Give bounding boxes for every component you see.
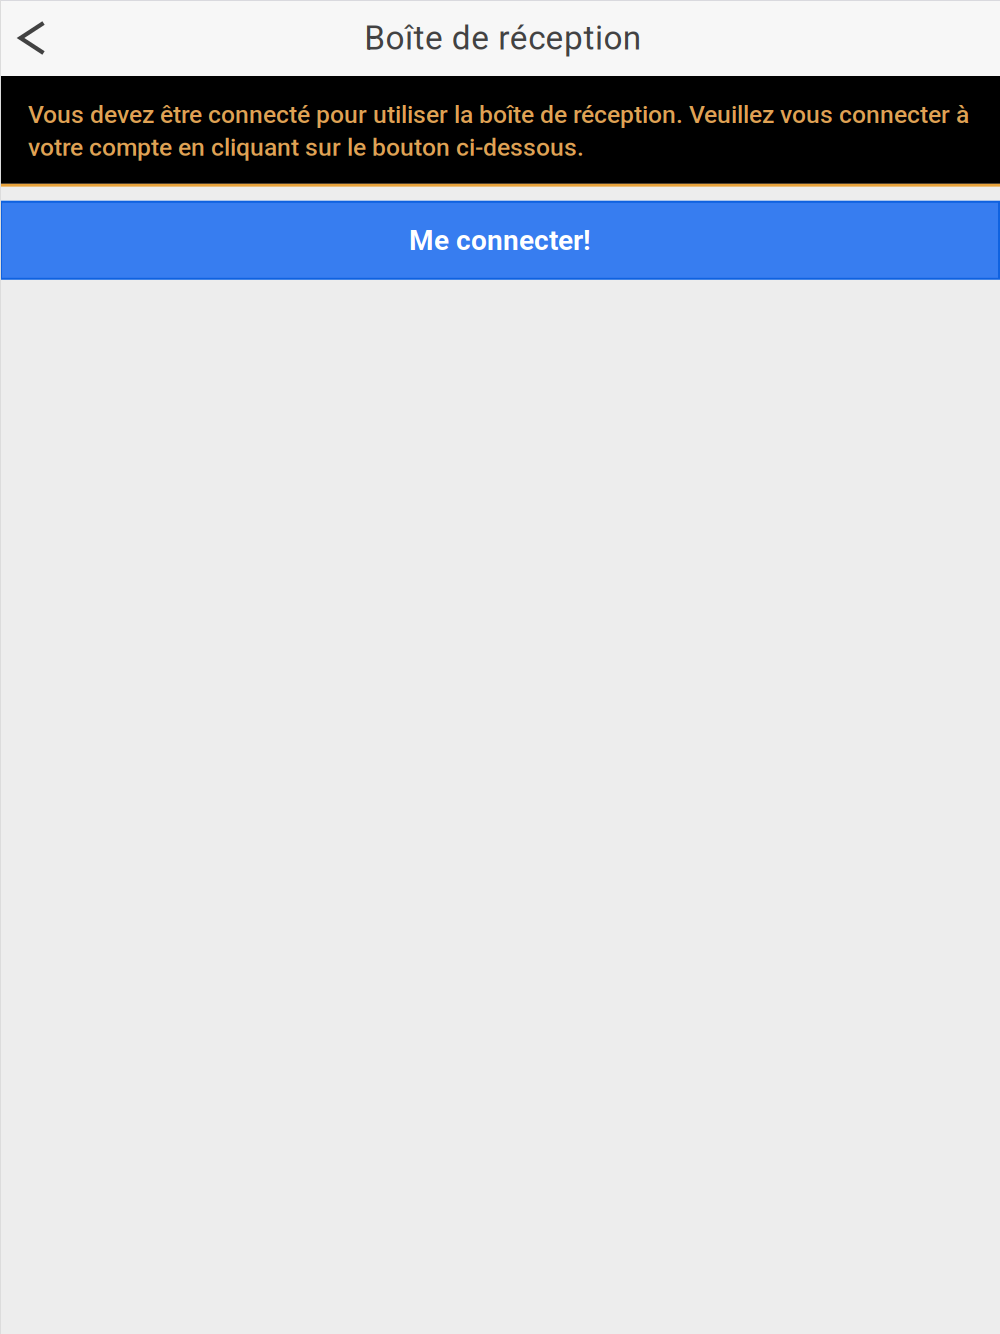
button[interactable]: Back <box>0 0 64 76</box>
staticText: Me connecter! <box>409 224 591 257</box>
staticText: Boîte de réception <box>364 18 641 58</box>
staticText: Vous devez être connecté pour utiliser l… <box>28 100 969 162</box>
button[interactable]: Me connecter! <box>0 201 1000 280</box>
